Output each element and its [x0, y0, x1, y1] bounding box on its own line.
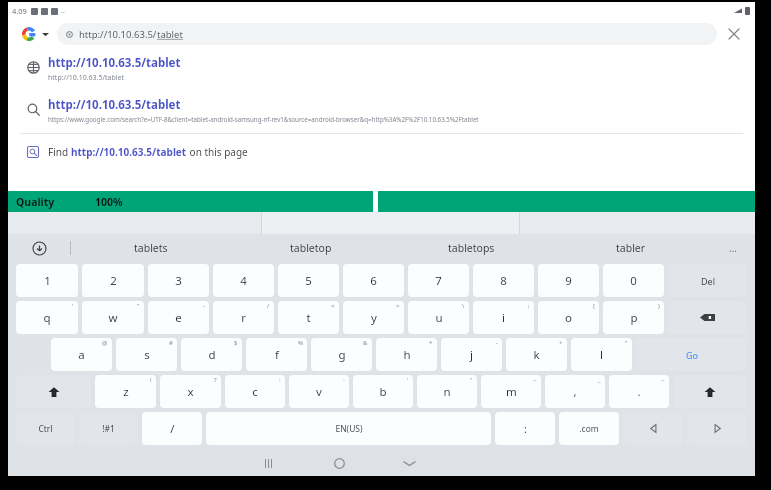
button[interactable]: c	[225, 375, 285, 408]
button[interactable]: y	[343, 301, 404, 334]
button[interactable]: 4	[213, 264, 274, 297]
button[interactable]: 7	[408, 264, 469, 297]
button[interactable]: u	[408, 301, 469, 334]
button[interactable]: w	[82, 301, 144, 334]
button[interactable]: 5	[278, 264, 339, 297]
staticText: https://www.google.com/search?e=UTF-8&cl…	[48, 115, 479, 123]
button[interactable]: Move cursor left	[623, 412, 683, 445]
button[interactable]: !#1	[79, 412, 138, 445]
button[interactable]: 6	[343, 264, 404, 297]
button[interactable]: tabletop	[231, 234, 391, 262]
staticText: tablets	[134, 241, 168, 255]
button[interactable]: Search engine options	[42, 31, 49, 38]
button[interactable]: g	[311, 338, 372, 371]
button[interactable]: n	[417, 375, 477, 408]
button[interactable]: Find	[8, 134, 755, 170]
staticText: l	[600, 347, 603, 363]
button[interactable]: f	[246, 338, 307, 371]
button[interactable]: Quality	[8, 191, 373, 212]
button[interactable]: Home	[322, 450, 356, 476]
button[interactable]: t	[278, 301, 339, 334]
button[interactable]: Del	[668, 264, 747, 297]
staticText: !	[150, 376, 152, 384]
button[interactable]: i	[473, 301, 534, 334]
staticText: 3	[175, 273, 182, 289]
staticText: <	[331, 302, 335, 310]
staticText: ~	[661, 376, 665, 384]
button[interactable]: e	[148, 301, 209, 334]
button[interactable]: p	[603, 301, 664, 334]
staticText: 8	[500, 273, 507, 289]
button[interactable]: http://10.10.63.5/tablet	[8, 97, 755, 123]
button[interactable]: tabletops	[391, 234, 551, 262]
button[interactable]: Voice input	[8, 234, 70, 262]
button[interactable]: 0	[603, 264, 664, 297]
staticText: z	[123, 384, 129, 400]
staticText: :	[524, 422, 527, 436]
button[interactable]: r	[213, 301, 274, 334]
button[interactable]: s	[116, 338, 177, 371]
button[interactable]: m	[481, 375, 541, 408]
button[interactable]: o	[538, 301, 599, 334]
button[interactable]: v	[289, 375, 349, 408]
button[interactable]: h	[376, 338, 437, 371]
button[interactable]: http://10.10.63.5/	[57, 23, 717, 45]
button[interactable]: Clear	[723, 23, 745, 45]
button[interactable]: .com	[559, 412, 619, 445]
staticText: http://10.10.63.5/tablet	[48, 55, 181, 71]
button[interactable]: Ctrl	[16, 412, 75, 445]
button[interactable]: z	[95, 375, 156, 408]
button[interactable]: More suggestions	[711, 234, 755, 262]
staticText: http://10.10.63.5/tablet	[48, 73, 125, 83]
staticText: tabletop	[290, 241, 332, 255]
button[interactable]: Go	[636, 338, 747, 371]
staticText: EN(US)	[335, 423, 363, 435]
button[interactable]: 1	[16, 264, 78, 297]
button[interactable]: Hide keyboard	[392, 450, 426, 476]
button[interactable]: 9	[538, 264, 599, 297]
staticText: e	[175, 310, 182, 326]
staticText: ...	[729, 241, 738, 255]
button[interactable]: l	[571, 338, 632, 371]
staticText: %	[298, 339, 303, 347]
button[interactable]: tabler	[551, 234, 711, 262]
staticText: tabler	[616, 241, 646, 255]
button[interactable]: a	[51, 338, 112, 371]
button[interactable]: q	[16, 301, 78, 334]
button[interactable]: tablets	[71, 234, 231, 262]
button[interactable]: 3	[148, 264, 209, 297]
staticText: 6	[370, 273, 377, 289]
button[interactable]: Move cursor right	[687, 412, 747, 445]
button[interactable]: /	[142, 412, 202, 445]
button[interactable]: Recents	[252, 450, 286, 476]
button[interactable]: Google	[18, 23, 40, 45]
button[interactable]: k	[506, 338, 567, 371]
staticText: c	[252, 384, 258, 400]
button[interactable]: Backspace	[668, 301, 747, 334]
button[interactable]: 8	[473, 264, 534, 297]
button[interactable]: .	[609, 375, 669, 408]
button[interactable]: Shift	[16, 375, 91, 408]
staticText: s	[144, 347, 150, 363]
staticText: j	[470, 347, 473, 363]
staticText: http://10.10.63.5/	[79, 28, 157, 41]
staticText: tablet	[157, 28, 183, 41]
staticText: x	[187, 384, 194, 400]
button[interactable]: x	[160, 375, 221, 408]
staticText: on this page	[187, 145, 248, 159]
staticText: r	[241, 310, 246, 326]
staticText: p	[630, 310, 638, 326]
staticText: q	[43, 310, 51, 326]
button[interactable]: :	[495, 412, 555, 445]
button[interactable]: b	[353, 375, 413, 408]
button[interactable]: j	[441, 338, 502, 371]
button[interactable]: Shift	[673, 375, 747, 408]
button[interactable]: 2	[82, 264, 144, 297]
button[interactable]: ,	[545, 375, 605, 408]
button[interactable]: d	[181, 338, 242, 371]
staticText: ..	[61, 6, 65, 16]
staticText: $	[234, 339, 238, 347]
button[interactable]: http://10.10.63.5/tablet	[8, 55, 755, 83]
button[interactable]: EN(US)	[206, 412, 491, 445]
